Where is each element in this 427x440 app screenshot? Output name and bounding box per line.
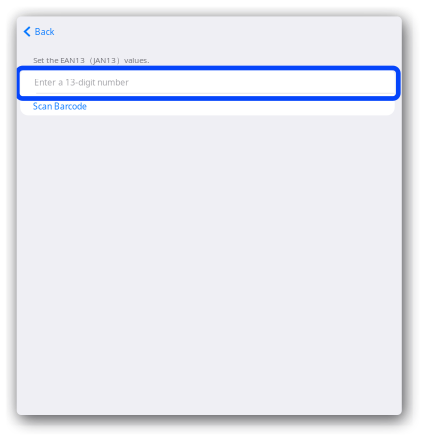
button[interactable]: Scan Barcode — [33, 95, 93, 117]
staticText: Back — [35, 26, 55, 38]
button[interactable]: Back — [19, 21, 55, 42]
staticText: Set the EAN13（JAN13）values. — [33, 54, 149, 65]
staticText: Scan Barcode — [33, 100, 87, 112]
staticText: Enter a 13-digit number — [34, 76, 129, 88]
